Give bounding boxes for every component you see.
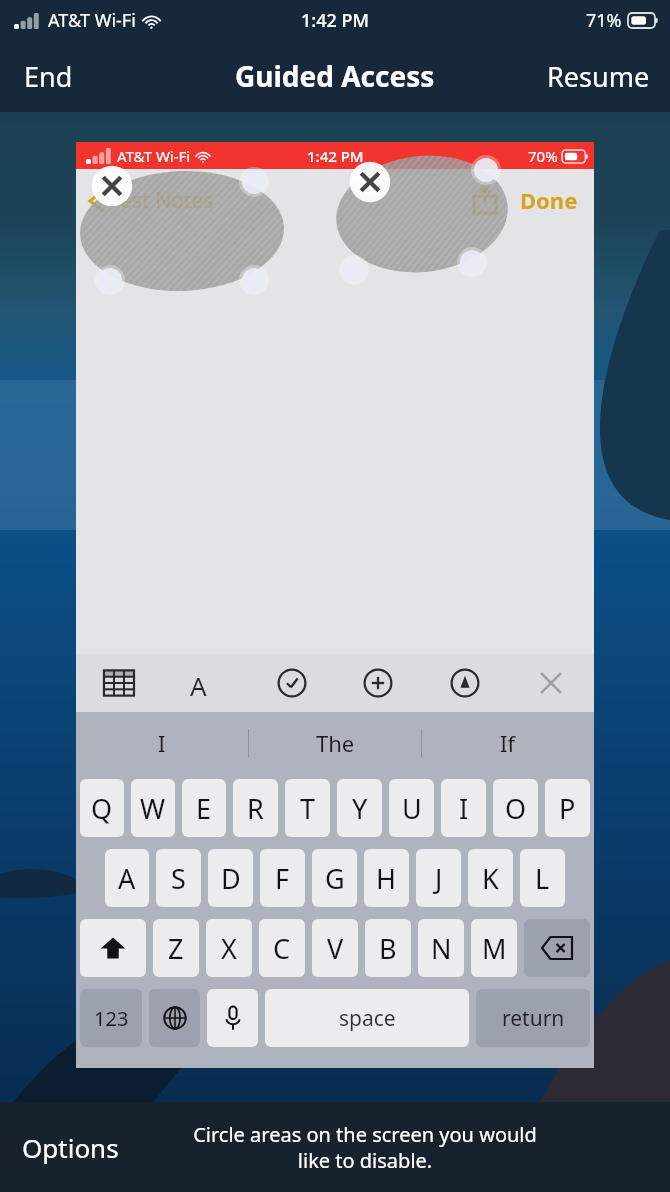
staticText: Options xyxy=(22,1130,119,1165)
button[interactable]: H xyxy=(364,849,409,907)
staticText: F xyxy=(275,860,290,897)
button[interactable]: O xyxy=(493,779,538,837)
staticText: X xyxy=(221,930,237,967)
button[interactable]: Options xyxy=(0,1122,129,1173)
staticText: Test Notes xyxy=(110,186,214,215)
staticText: P xyxy=(559,790,576,827)
button[interactable]: M xyxy=(471,919,517,977)
button[interactable]: R xyxy=(233,779,278,837)
button[interactable]: 123 xyxy=(80,989,142,1047)
button[interactable]: return xyxy=(476,989,590,1047)
button[interactable]: B xyxy=(365,919,411,977)
staticText: Q xyxy=(91,790,113,827)
button[interactable]: The xyxy=(249,712,421,774)
staticText: G xyxy=(325,860,345,897)
button[interactable]: Done xyxy=(516,181,582,219)
staticText: 71% xyxy=(586,8,622,33)
button[interactable]: C xyxy=(259,919,305,977)
staticText: Circle areas on the screen you would lik… xyxy=(193,1121,537,1174)
staticText: L xyxy=(535,860,550,897)
staticText: AT&T Wi-Fi xyxy=(117,146,191,166)
button[interactable]: F xyxy=(260,849,305,907)
button[interactable]: Close keyboard xyxy=(528,660,574,706)
staticText: Guided Access xyxy=(235,57,435,95)
staticText: A xyxy=(118,860,136,897)
staticText: return xyxy=(502,1004,565,1033)
staticText: 1:42 PM xyxy=(301,8,369,33)
button[interactable]: J xyxy=(416,849,461,907)
button[interactable]: Table xyxy=(96,660,142,706)
button[interactable]: L xyxy=(520,849,565,907)
staticText: E xyxy=(196,790,212,827)
button[interactable]: Dictation xyxy=(207,989,258,1047)
staticText: W xyxy=(140,790,166,827)
staticText: U xyxy=(402,790,422,827)
staticText: I xyxy=(459,790,469,827)
button[interactable]: W xyxy=(131,779,175,837)
button[interactable]: I xyxy=(441,779,486,837)
button[interactable]: P xyxy=(545,779,590,837)
staticText: Aa xyxy=(190,668,220,698)
staticText: O xyxy=(505,790,527,827)
button[interactable]: G xyxy=(312,849,357,907)
staticText: D xyxy=(221,860,241,897)
button[interactable]: Backspace xyxy=(524,919,590,977)
staticText: K xyxy=(482,860,499,897)
button[interactable]: D xyxy=(208,849,253,907)
staticText: 123 xyxy=(94,1005,129,1032)
button[interactable]: Markup xyxy=(442,660,488,706)
button[interactable]: Remove masked area xyxy=(90,164,134,208)
staticText: I xyxy=(158,728,166,758)
button[interactable]: Y xyxy=(337,779,382,837)
button[interactable]: S xyxy=(156,849,201,907)
staticText: S xyxy=(171,860,186,897)
button[interactable]: V xyxy=(312,919,358,977)
staticText: R xyxy=(247,790,264,827)
staticText: M xyxy=(482,930,507,967)
staticText: space xyxy=(339,1004,396,1033)
staticText: AT&T Wi-Fi xyxy=(48,8,136,33)
button[interactable]: Change keyboard xyxy=(149,989,200,1047)
button[interactable]: Q xyxy=(80,779,124,837)
staticText: 1:42 PM xyxy=(307,146,364,166)
button[interactable]: space xyxy=(265,989,469,1047)
button[interactable]: T xyxy=(285,779,330,837)
button[interactable]: Z xyxy=(153,919,199,977)
staticText: Resume xyxy=(547,58,650,95)
button[interactable]: U xyxy=(389,779,434,837)
button[interactable]: End xyxy=(0,48,97,105)
button[interactable]: Shift xyxy=(80,919,146,977)
staticText: H xyxy=(376,860,397,897)
button[interactable]: A xyxy=(105,849,149,907)
staticText: C xyxy=(273,930,291,967)
button[interactable]: Text format xyxy=(182,660,228,706)
button[interactable]: Resume xyxy=(527,48,670,105)
staticText: Done xyxy=(520,185,578,215)
button[interactable]: X xyxy=(206,919,252,977)
button[interactable]: Remove masked area xyxy=(348,160,392,204)
button[interactable]: I xyxy=(76,712,248,774)
button[interactable]: Checklist xyxy=(269,660,315,706)
staticText: The xyxy=(316,728,355,758)
staticText: Y xyxy=(352,790,368,827)
staticText: End xyxy=(24,58,73,95)
staticText: B xyxy=(379,930,397,967)
button[interactable]: If xyxy=(422,712,594,774)
staticText: N xyxy=(431,930,452,967)
staticText: If xyxy=(500,728,516,758)
staticText: V xyxy=(327,930,344,967)
staticText: 70% xyxy=(528,146,558,166)
button[interactable]: E xyxy=(182,779,226,837)
staticText: Z xyxy=(168,930,184,967)
staticText: J xyxy=(435,860,443,897)
staticText: T xyxy=(300,790,316,827)
button[interactable]: K xyxy=(468,849,513,907)
button[interactable]: N xyxy=(418,919,464,977)
button[interactable]: Add attachment xyxy=(355,660,401,706)
